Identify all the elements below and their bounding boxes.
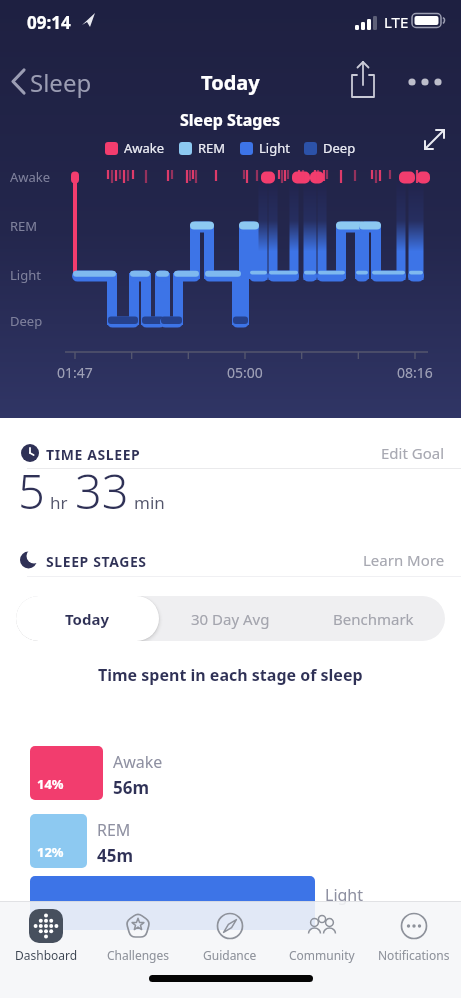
staticText: 09:14 <box>27 11 71 34</box>
button[interactable] <box>402 66 448 96</box>
staticText: Time spent in each stage of sleep <box>98 664 363 686</box>
staticText: REM <box>198 139 226 157</box>
staticText: SLEEP STAGES <box>46 552 147 571</box>
staticText: 5 <box>18 459 45 523</box>
staticText: Guidance <box>203 947 257 963</box>
staticText: Today <box>65 609 110 629</box>
staticText: 56m <box>113 776 150 799</box>
button[interactable]: Guidance <box>184 908 276 963</box>
staticText: Awake <box>113 751 163 773</box>
staticText: Today <box>201 69 260 96</box>
staticText: Learn More <box>363 550 445 570</box>
staticText: Awake <box>10 168 51 186</box>
staticText: 12% <box>37 843 64 861</box>
button[interactable]: Today <box>16 596 159 641</box>
staticText: Community <box>289 947 355 963</box>
button[interactable]: Notifications <box>368 908 460 963</box>
button[interactable]: Benchmark <box>302 596 445 641</box>
staticText: Sleep <box>30 66 92 99</box>
staticText: min <box>134 491 165 514</box>
button[interactable] <box>346 58 380 102</box>
staticText: 33 <box>75 459 129 523</box>
staticText: Challenges <box>107 947 170 963</box>
staticText: 01:47 <box>57 363 93 382</box>
staticText: 08:16 <box>397 363 433 382</box>
button[interactable]: 30 Day Avg <box>159 596 302 641</box>
staticText: Sleep Stages <box>180 109 281 131</box>
staticText: Light <box>10 266 41 284</box>
staticText: 30 Day Avg <box>191 609 270 629</box>
staticText: LTE <box>384 12 409 32</box>
button[interactable] <box>418 123 450 155</box>
staticText: REM <box>97 819 131 841</box>
button[interactable]: Community <box>276 908 368 963</box>
staticText: Edit Goal <box>381 443 445 463</box>
button[interactable]: Sleep <box>10 66 100 100</box>
button[interactable]: Dashboard <box>0 908 92 963</box>
staticText: Awake <box>124 139 165 157</box>
button[interactable]: Edit Goal <box>0 440 445 466</box>
staticText: 05:00 <box>227 363 263 382</box>
staticText: REM <box>10 217 38 235</box>
button[interactable]: Challenges <box>92 908 184 963</box>
button[interactable]: Learn More <box>0 547 445 573</box>
staticText: hr <box>50 491 68 514</box>
staticText: TIME ASLEEP <box>46 445 141 464</box>
staticText: 14% <box>37 775 64 793</box>
staticText: 45m <box>97 844 134 867</box>
staticText: Dashboard <box>15 947 78 963</box>
staticText: Deep <box>10 312 43 330</box>
staticText: Light <box>259 139 290 157</box>
staticText: Notifications <box>378 947 450 963</box>
staticText: Benchmark <box>333 609 414 629</box>
staticText: Deep <box>323 139 356 157</box>
staticText: Light <box>325 884 364 906</box>
